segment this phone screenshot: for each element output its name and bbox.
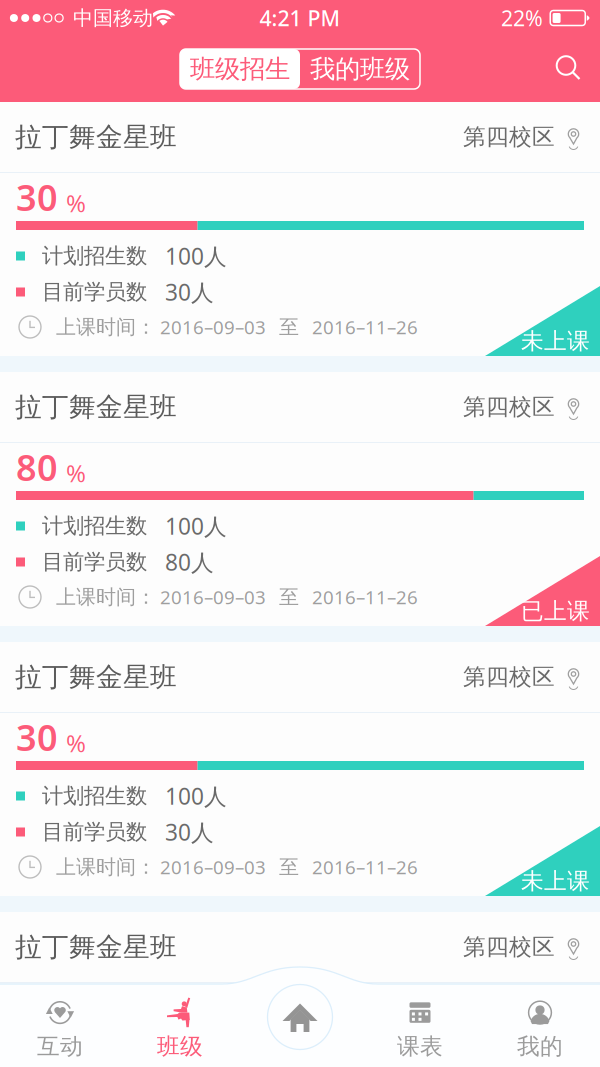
- staticText: 100人: [165, 241, 227, 271]
- staticText: 4:21 PM: [259, 4, 340, 32]
- staticText: 30: [16, 983, 58, 1031]
- staticText: 拉丁舞金星班: [15, 661, 177, 693]
- button[interactable]: 未上课: [0, 642, 600, 896]
- staticText: 互动: [37, 1033, 83, 1060]
- staticText: 30人: [165, 277, 214, 307]
- staticText: 已上课: [521, 597, 590, 625]
- staticText: 拉丁舞金星班: [15, 121, 177, 153]
- staticText: %: [66, 727, 86, 759]
- staticText: 目前学员数: [42, 819, 147, 845]
- staticText: 30: [16, 713, 58, 761]
- staticText: 80人: [165, 547, 214, 577]
- staticText: 计划招生数: [42, 1053, 147, 1067]
- staticText: 100人: [165, 1051, 227, 1067]
- staticText: 2016–09–03: [160, 855, 266, 879]
- staticText: 课表: [397, 1033, 443, 1060]
- staticText: 未上课: [521, 867, 590, 895]
- staticText: 拉丁舞金星班: [15, 391, 177, 423]
- staticText: 至: [279, 315, 299, 339]
- staticText: 目前学员数: [42, 279, 147, 305]
- button[interactable]: Search: [552, 52, 586, 86]
- staticText: 100人: [165, 781, 227, 811]
- staticText: 至: [279, 855, 299, 879]
- staticText: 第四校区: [463, 933, 555, 961]
- button[interactable]: 已上课: [0, 372, 600, 626]
- staticText: 上课时间：: [56, 315, 156, 339]
- staticText: 第四校区: [463, 393, 555, 421]
- staticText: 目前学员数: [42, 549, 147, 575]
- staticText: 2016–11–26: [312, 855, 418, 879]
- staticText: 未上课: [521, 327, 590, 355]
- staticText: 中国移动: [73, 6, 153, 30]
- staticText: %: [66, 187, 86, 219]
- staticText: 22%: [501, 4, 543, 32]
- button[interactable]: 未上课: [0, 912, 600, 1067]
- staticText: 计划招生数: [42, 783, 147, 809]
- staticText: 30: [16, 173, 58, 221]
- staticText: 第四校区: [463, 123, 555, 151]
- staticText: 我的: [517, 1033, 563, 1060]
- staticText: 上课时间：: [56, 855, 156, 879]
- staticText: 2016–11–26: [312, 315, 418, 339]
- staticText: 80: [16, 443, 58, 491]
- button[interactable]: 班级招生: [180, 49, 300, 89]
- button[interactable]: 互动: [0, 966, 120, 1067]
- staticText: 班级招生: [190, 53, 290, 84]
- staticText: 上课时间：: [56, 585, 156, 609]
- button[interactable]: Home: [266, 983, 334, 1051]
- staticText: 班级: [157, 1033, 203, 1060]
- staticText: 2016–11–26: [312, 585, 418, 609]
- staticText: 至: [279, 585, 299, 609]
- staticText: 拉丁舞金星班: [15, 931, 177, 963]
- button[interactable]: 未上课: [0, 102, 600, 356]
- staticText: 30人: [165, 817, 214, 847]
- staticText: 2016–09–03: [160, 315, 266, 339]
- button[interactable]: 我的班级: [300, 49, 420, 89]
- button[interactable]: 课表: [360, 966, 480, 1067]
- button[interactable]: 班级: [120, 966, 240, 1067]
- staticText: %: [66, 997, 86, 1029]
- staticText: 100人: [165, 511, 227, 541]
- staticText: 计划招生数: [42, 243, 147, 269]
- staticText: 我的班级: [310, 53, 410, 84]
- staticText: 第四校区: [463, 663, 555, 691]
- staticText: 计划招生数: [42, 513, 147, 539]
- staticText: 2016–09–03: [160, 585, 266, 609]
- staticText: %: [66, 457, 86, 489]
- button[interactable]: 我的: [480, 966, 600, 1067]
